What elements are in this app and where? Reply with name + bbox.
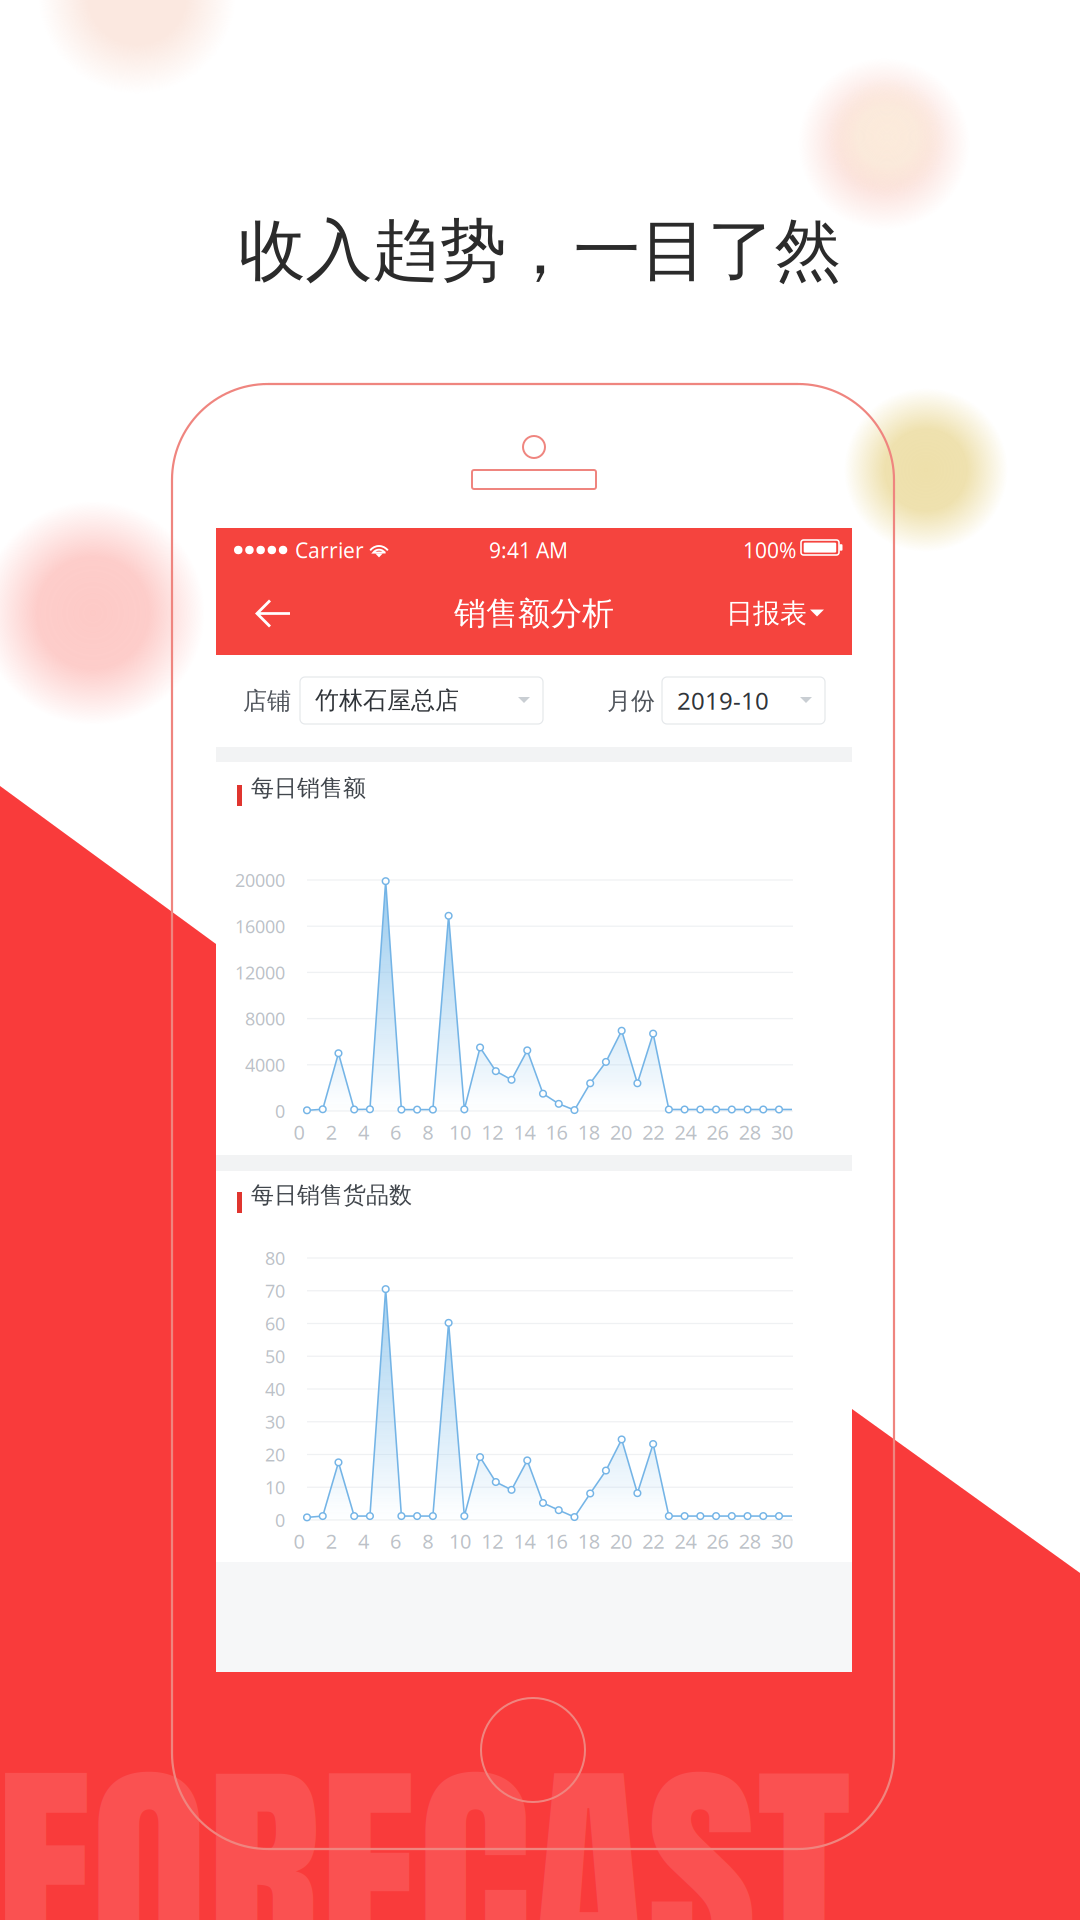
staticText: Carrier	[295, 536, 364, 564]
staticText: 30	[771, 1527, 793, 1555]
staticText: 8000	[245, 1006, 285, 1031]
staticText: 14	[513, 1527, 535, 1555]
staticText: 6	[390, 1527, 401, 1555]
staticText: 80	[265, 1246, 285, 1270]
button[interactable]: Back	[230, 572, 316, 655]
staticText: 40	[265, 1377, 285, 1401]
staticText: 日报表	[726, 596, 807, 630]
staticText: 20	[265, 1442, 285, 1467]
staticText: 22	[642, 1527, 664, 1555]
staticText: 竹林石屋总店	[315, 685, 459, 716]
button[interactable]: 竹林石屋总店	[300, 677, 543, 724]
button[interactable]: 日报表	[726, 572, 852, 655]
staticText: 50	[265, 1344, 285, 1368]
staticText: 2	[326, 1527, 337, 1555]
staticText: 16000	[235, 914, 285, 938]
staticText: 30	[265, 1409, 285, 1434]
staticText: 10	[265, 1475, 285, 1499]
staticText: 6	[390, 1118, 401, 1146]
staticText: 28	[739, 1527, 761, 1555]
staticText: 18	[578, 1527, 600, 1555]
staticText: 16	[546, 1118, 568, 1146]
staticText: 70	[265, 1278, 285, 1303]
staticText: 26	[707, 1527, 729, 1555]
staticText: 26	[707, 1118, 729, 1146]
staticText: 18	[578, 1118, 600, 1146]
staticText: 14	[513, 1118, 535, 1146]
staticText: 8	[422, 1527, 433, 1555]
staticText: 0	[275, 1099, 285, 1123]
staticText: 22	[642, 1118, 664, 1146]
staticText: 4000	[245, 1052, 285, 1077]
staticText: 店铺	[243, 686, 291, 716]
staticText: 2019-10	[677, 684, 769, 717]
staticText: 销售额分析	[454, 593, 614, 634]
staticText: 24	[674, 1527, 696, 1555]
staticText: 20	[610, 1118, 632, 1146]
staticText: 60	[265, 1311, 285, 1336]
staticText: 12000	[235, 960, 285, 985]
staticText: 月份	[607, 686, 655, 716]
staticText: 0	[293, 1118, 304, 1146]
staticText: 每日销售货品数	[251, 1180, 412, 1209]
staticText: 12	[481, 1527, 503, 1555]
staticText: 100%	[743, 536, 796, 564]
staticText: 收入趋势，一目了然	[238, 209, 841, 293]
staticText: 每日销售额	[251, 773, 366, 802]
staticText: 2	[326, 1118, 337, 1146]
staticText: 16	[546, 1527, 568, 1555]
staticText: 0	[293, 1527, 304, 1555]
staticText: 20	[610, 1527, 632, 1555]
button[interactable]: 2019-10	[662, 677, 825, 724]
staticText: 0	[275, 1508, 285, 1532]
staticText: 24	[674, 1118, 696, 1146]
staticText: 10	[449, 1527, 471, 1555]
staticText: FORECAST	[0, 1698, 851, 1920]
staticText: 28	[739, 1118, 761, 1146]
staticText: 9:41 AM	[489, 536, 568, 564]
staticText: 10	[449, 1118, 471, 1146]
staticText: 4	[358, 1118, 369, 1146]
staticText: 12	[481, 1118, 503, 1146]
staticText: 8	[422, 1118, 433, 1146]
staticText: 30	[771, 1118, 793, 1146]
staticText: 20000	[235, 868, 285, 892]
staticText: 4	[358, 1527, 369, 1555]
